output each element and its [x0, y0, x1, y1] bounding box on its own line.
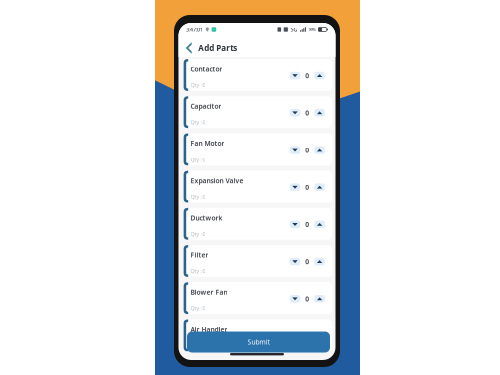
button[interactable]: Decrease quantity	[290, 183, 300, 191]
button[interactable]: Decrease quantity	[290, 72, 300, 79]
staticText: Qty : 0	[190, 119, 205, 126]
staticText: 0	[305, 108, 309, 117]
button[interactable]: Increase quantity	[314, 109, 325, 117]
button[interactable]: Back	[182, 39, 195, 57]
staticText: 0	[305, 146, 309, 154]
staticText: 0	[305, 71, 309, 80]
staticText: Submit	[247, 338, 269, 346]
button[interactable]: Submit	[187, 331, 330, 352]
staticText: Qty : 0	[190, 156, 205, 163]
button[interactable]: Filter	[183, 245, 332, 277]
staticText: Capacitor	[190, 102, 221, 111]
staticText: 0	[305, 294, 309, 303]
button[interactable]: Increase quantity	[314, 146, 325, 154]
staticText: Ductwork	[190, 213, 222, 222]
staticText: Qty : 0	[190, 230, 205, 237]
button[interactable]: Capacitor	[183, 96, 332, 128]
button[interactable]: Ductwork	[183, 208, 332, 240]
staticText: Air Handler	[190, 325, 227, 334]
staticText: 0	[305, 257, 309, 266]
staticText: Fan Motor	[190, 139, 224, 148]
button[interactable]: Decrease quantity	[290, 221, 300, 228]
button[interactable]: Decrease quantity	[290, 295, 300, 303]
button[interactable]: Decrease quantity	[290, 258, 300, 265]
staticText: Qty : 0	[190, 193, 205, 200]
button[interactable]: Increase quantity	[314, 295, 325, 303]
button[interactable]: Contactor	[183, 59, 332, 91]
button[interactable]: Increase quantity	[314, 221, 325, 228]
button[interactable]: Expansion Valve	[183, 171, 332, 203]
staticText: Add Parts	[198, 43, 237, 53]
staticText: 3:47:01	[186, 26, 203, 33]
staticText: 0	[305, 183, 309, 192]
button[interactable]: Increase quantity	[314, 72, 325, 79]
staticText: Qty : 0	[190, 305, 205, 312]
staticText: Expansion Valve	[190, 176, 243, 185]
staticText: 0	[305, 220, 309, 229]
staticText: Qty : 0	[190, 81, 205, 89]
staticText: Qty : 0	[190, 267, 205, 275]
staticText: Contactor	[190, 65, 222, 73]
button[interactable]: Blower Fan	[183, 282, 332, 314]
button[interactable]: Decrease quantity	[290, 146, 300, 154]
button[interactable]: Air Handler	[183, 319, 332, 351]
button[interactable]: Increase quantity	[314, 258, 325, 265]
button[interactable]: Fan Motor	[183, 133, 332, 165]
staticText: Blower Fan	[190, 288, 227, 297]
staticText: Filter	[190, 251, 208, 259]
staticText: 5G	[290, 26, 297, 33]
button[interactable]: Increase quantity	[314, 183, 325, 191]
button[interactable]: Decrease quantity	[290, 109, 300, 117]
staticText: 99%	[308, 27, 315, 32]
